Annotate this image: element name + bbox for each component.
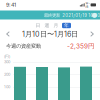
staticText: 週 xyxy=(44,22,49,28)
staticText: 300 xyxy=(4,59,10,64)
staticText: 200 xyxy=(4,72,10,77)
staticText: 月 xyxy=(53,22,58,28)
staticText: 日 xyxy=(35,22,40,28)
staticText: (円) xyxy=(4,54,10,59)
staticText: 今週の資産変動 xyxy=(6,43,41,49)
staticText: 2021/01/19 16:30 xyxy=(62,13,100,18)
staticText: 9:41 xyxy=(6,1,16,8)
button[interactable]: 月 xyxy=(0,0,8,6)
staticText: 最終更新 xyxy=(44,13,60,18)
staticText: 年 xyxy=(64,22,69,28)
button[interactable]: 週 xyxy=(0,0,8,6)
staticText: 100 xyxy=(4,84,10,89)
button[interactable]: Refresh xyxy=(0,0,7,6)
staticText: -2,359円 xyxy=(67,42,94,50)
button[interactable]: Previous week xyxy=(0,0,10,9)
button[interactable]: 日 xyxy=(0,0,8,6)
button[interactable]: 年 xyxy=(0,0,9,5)
button[interactable]: Next week xyxy=(0,0,10,9)
staticText: wifi xyxy=(86,1,90,9)
staticText: 1月10日〜1月16日 xyxy=(22,29,78,39)
